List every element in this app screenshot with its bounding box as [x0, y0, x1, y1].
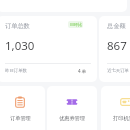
- staticText: 打印机管理: [113, 115, 130, 122]
- staticText: 日环比: [70, 22, 82, 27]
- button[interactable]: 总金额: [99, 16, 130, 82]
- staticText: 昨日订单数: [5, 68, 27, 74]
- staticText: 优惠券管理: [59, 115, 85, 122]
- staticText: 1,030: [5, 38, 35, 54]
- staticText: 近七天订单: [107, 68, 129, 74]
- staticText: 订单总数: [5, 22, 30, 30]
- button[interactable]: 订单总数: [0, 16, 97, 82]
- staticText: 总金额: [107, 22, 126, 30]
- button[interactable]: 订单管理: [0, 86, 45, 130]
- button[interactable]: 优惠券管理: [47, 86, 97, 130]
- staticText: 867: [107, 38, 127, 54]
- button[interactable]: 打印机管理: [101, 86, 130, 130]
- staticText: 订单管理: [10, 115, 31, 122]
- staticText: 4 单: [78, 68, 87, 74]
